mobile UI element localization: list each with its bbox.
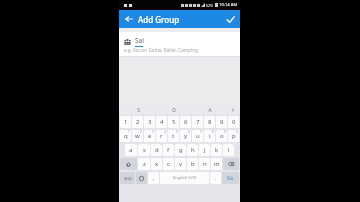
staticText: ' [220, 158, 221, 162]
button[interactable]: m [211, 158, 222, 170]
staticText: , [153, 174, 155, 182]
button[interactable]: 3 [144, 116, 155, 128]
button[interactable]: A [192, 105, 228, 115]
staticText: y [184, 132, 188, 140]
staticText: p [232, 132, 236, 140]
staticText: D [172, 107, 176, 114]
button[interactable]: Backspace [223, 158, 239, 170]
staticText: g [179, 146, 183, 154]
staticText: 7 [196, 118, 200, 126]
staticText: 10:14 AM [219, 2, 238, 8]
staticText: l [228, 146, 230, 154]
staticText: 1 [128, 130, 130, 134]
staticText: u [196, 132, 200, 140]
button[interactable]: p [228, 130, 239, 142]
button[interactable]: 9 [216, 116, 227, 128]
staticText: h [191, 146, 195, 154]
button[interactable]: d [151, 144, 162, 156]
staticText: 3 [152, 130, 154, 134]
button[interactable]: More suggestions [228, 105, 238, 115]
staticText: ' [160, 144, 161, 148]
staticText: A [208, 107, 212, 114]
button[interactable]: s [138, 144, 150, 156]
button[interactable]: j [199, 144, 210, 156]
button[interactable]: b [187, 158, 198, 170]
staticText: 4 [160, 118, 164, 126]
button[interactable]: Back [122, 12, 136, 26]
button[interactable]: Space [160, 172, 209, 184]
button[interactable]: k [211, 144, 222, 156]
button[interactable]: Shift [120, 158, 137, 170]
staticText: d [155, 146, 159, 154]
button[interactable]: D [156, 105, 192, 115]
staticText: 62% [206, 3, 214, 8]
button[interactable]: i [204, 130, 215, 142]
staticText: 9 [220, 118, 224, 126]
button[interactable]: q [120, 130, 131, 142]
staticText: 0 [232, 118, 236, 126]
staticText: 8 [208, 118, 212, 126]
button[interactable]: Sal [119, 32, 240, 57]
button[interactable]: 2 [132, 116, 143, 128]
button[interactable]: 7 [192, 116, 203, 128]
button[interactable]: , [148, 172, 159, 184]
staticText: i [209, 132, 211, 140]
button[interactable]: S [121, 105, 156, 115]
staticText: j [204, 146, 206, 154]
button[interactable]: Emoji [136, 172, 147, 184]
staticText: Add Group [138, 14, 180, 25]
button[interactable]: h [187, 144, 198, 156]
button[interactable]: Go [222, 172, 239, 184]
button[interactable]: n [199, 158, 210, 170]
staticText: 4 [164, 130, 166, 134]
button[interactable]: . [210, 172, 221, 184]
button[interactable]: 8 [204, 116, 215, 128]
staticText: 8 [212, 130, 214, 134]
staticText: Sal [135, 36, 144, 45]
button[interactable]: a [125, 144, 137, 156]
button[interactable]: r [156, 130, 167, 142]
staticText: 2 [136, 118, 140, 126]
button[interactable]: t [168, 130, 179, 142]
button[interactable]: w [132, 130, 143, 142]
staticText: 0 [236, 130, 238, 134]
staticText: a [129, 146, 133, 154]
staticText: r [160, 132, 163, 140]
staticText: !#☺ [124, 176, 132, 181]
button[interactable]: x [151, 158, 162, 170]
button[interactable]: 5 [168, 116, 179, 128]
button[interactable]: 0 [228, 116, 239, 128]
button[interactable]: e [144, 130, 155, 142]
staticText: ' [135, 144, 136, 148]
button[interactable]: Symbols [120, 172, 135, 184]
button[interactable]: l [223, 144, 234, 156]
staticText: x [155, 160, 159, 168]
staticText: 1 [124, 118, 128, 126]
staticText: ' [184, 158, 185, 162]
button[interactable]: Done [223, 12, 237, 26]
staticText: ' [172, 144, 173, 148]
staticText: n [203, 160, 207, 168]
staticText: c [167, 160, 170, 168]
staticText: ' [196, 144, 197, 148]
button[interactable]: y [180, 130, 191, 142]
staticText: b [191, 160, 195, 168]
button[interactable]: 4 [156, 116, 167, 128]
staticText: t [172, 132, 175, 140]
staticText: ' [232, 144, 233, 148]
button[interactable]: f [163, 144, 174, 156]
staticText: ' [148, 144, 149, 148]
button[interactable]: 1 [120, 116, 131, 128]
staticText: 5 [172, 118, 176, 126]
staticText: ' [184, 144, 185, 148]
button[interactable]: 6 [180, 116, 191, 128]
button[interactable]: c [163, 158, 174, 170]
staticText: ' [196, 158, 197, 162]
button[interactable]: g [175, 144, 186, 156]
button[interactable]: z [138, 158, 150, 170]
staticText: S [137, 107, 140, 114]
button[interactable]: o [216, 130, 227, 142]
staticText: 7 [200, 130, 202, 134]
button[interactable]: v [175, 158, 186, 170]
button[interactable]: u [192, 130, 203, 142]
